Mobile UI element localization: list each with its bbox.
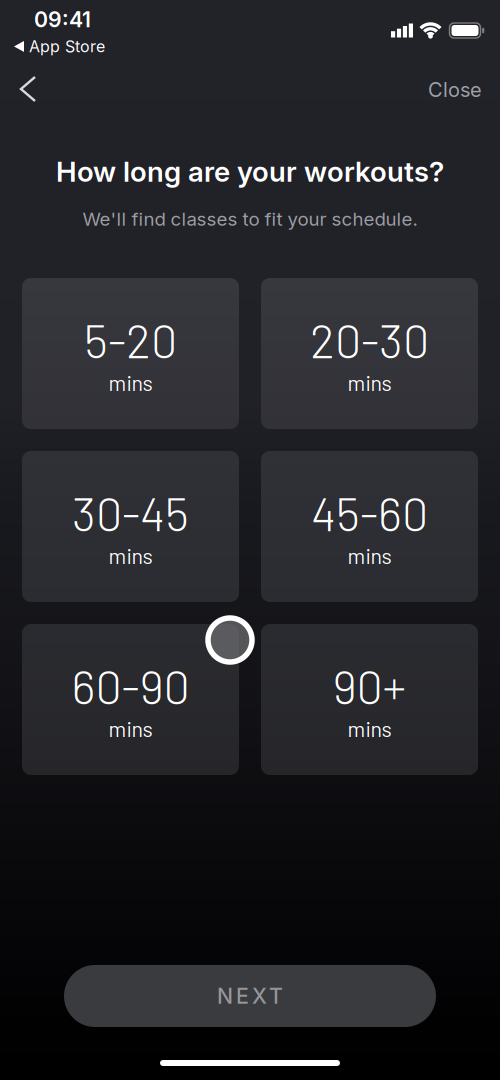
staticText: Close [428,78,482,102]
staticText: mins [108,543,152,568]
staticText: mins [108,716,152,741]
button[interactable]: Back [21,77,35,101]
staticText: mins [347,370,391,395]
button[interactable]: 45-60 [261,451,478,602]
staticText: 30-45 [72,485,189,541]
staticText: 09:41 [34,7,91,32]
staticText: mins [347,716,391,741]
staticText: mins [347,543,391,568]
staticText: 20-30 [310,312,429,368]
button[interactable]: 60-90 [22,624,239,775]
staticText: We'll find classes to fit your schedule. [82,208,417,230]
button[interactable]: 5-20 [22,278,239,429]
staticText: 90+ [332,658,406,714]
button[interactable]: 30-45 [22,451,239,602]
button[interactable]: 20-30 [261,278,478,429]
staticText: NEXT [217,983,283,1009]
button[interactable]: Close [428,78,482,102]
staticText: How long are your workouts? [56,155,444,188]
staticText: 45-60 [311,485,428,541]
staticText: mins [108,370,152,395]
button[interactable]: Return to App Store [14,37,105,56]
staticText: 60-90 [71,658,189,714]
staticText: 5-20 [84,312,177,368]
staticText: App Store [29,37,105,56]
button[interactable]: 90+ [261,624,478,775]
button[interactable]: NEXT [64,965,436,1027]
